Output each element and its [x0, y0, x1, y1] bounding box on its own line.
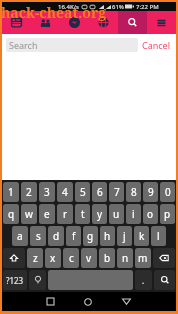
staticText: Search	[9, 39, 38, 51]
staticText: v	[86, 251, 92, 265]
staticText: w	[25, 207, 33, 221]
staticText: i	[132, 207, 135, 221]
button[interactable]: Shift	[3, 248, 25, 268]
button[interactable]: e	[39, 204, 55, 224]
staticText: hack-cheat.org	[1, 3, 107, 22]
button[interactable]: Feed	[2, 11, 31, 34]
staticText: 3	[44, 185, 50, 199]
staticText: 61%	[112, 3, 124, 11]
button[interactable]: p	[160, 204, 175, 224]
button[interactable]: Search	[118, 11, 147, 34]
button[interactable]: Discover	[89, 11, 118, 34]
button[interactable]: Friends	[31, 11, 60, 34]
button[interactable]: y	[92, 204, 107, 224]
button[interactable]: Back	[113, 292, 139, 311]
staticText: 1	[8, 185, 14, 199]
button[interactable]: c	[63, 248, 79, 268]
button[interactable]: b	[99, 248, 115, 268]
button[interactable]: u	[109, 204, 124, 224]
button[interactable]: x	[45, 248, 61, 268]
button[interactable]: 2	[21, 182, 37, 202]
button[interactable]: Emoji	[29, 270, 46, 290]
button[interactable]: k	[134, 226, 149, 246]
staticText: u	[113, 207, 120, 221]
staticText: ?123	[6, 275, 24, 286]
staticText: n	[122, 251, 129, 265]
button[interactable]: Messages	[60, 11, 89, 34]
button[interactable]: 9	[143, 182, 158, 202]
staticText: 6	[97, 185, 103, 199]
button[interactable]: 1	[3, 182, 19, 202]
button[interactable]: 0	[160, 182, 175, 202]
button[interactable]	[48, 270, 133, 290]
button[interactable]: a	[12, 226, 28, 246]
button[interactable]: Search	[6, 38, 138, 52]
staticText: h	[104, 229, 111, 243]
button[interactable]: 5	[75, 182, 90, 202]
staticText: l	[157, 229, 160, 243]
button[interactable]: 7	[109, 182, 124, 202]
staticText: 7:22 PM	[136, 3, 159, 11]
staticText: 0	[165, 185, 171, 199]
button[interactable]: Recents	[37, 292, 63, 311]
button[interactable]: j	[117, 226, 132, 246]
staticText: 5	[80, 185, 86, 199]
button[interactable]: l	[151, 226, 166, 246]
button[interactable]: .	[135, 270, 152, 290]
button[interactable]: s	[30, 226, 46, 246]
staticText: f	[72, 229, 76, 243]
button[interactable]: 8	[126, 182, 141, 202]
staticText: 2	[26, 185, 32, 199]
staticText: 8	[131, 185, 137, 199]
button[interactable]: q	[3, 204, 19, 224]
button[interactable]: m	[135, 248, 151, 268]
button[interactable]: 6	[92, 182, 107, 202]
staticText: 7	[114, 185, 120, 199]
staticText: x	[50, 251, 56, 265]
button[interactable]: d	[48, 226, 64, 246]
button[interactable]: o	[143, 204, 158, 224]
staticText: s	[36, 229, 41, 243]
staticText: 4	[62, 185, 68, 199]
staticText: k	[139, 229, 145, 243]
button[interactable]: Home	[75, 292, 101, 311]
button[interactable]: g	[83, 226, 98, 246]
button[interactable]: h	[100, 226, 115, 246]
button[interactable]: f	[66, 226, 81, 246]
button[interactable]: Search	[154, 270, 175, 290]
button[interactable]: r	[57, 204, 73, 224]
staticText: 16.4K/s	[58, 3, 79, 11]
staticText: 9	[148, 185, 154, 199]
staticText: m	[138, 251, 148, 265]
staticText: d	[53, 229, 60, 243]
staticText: a	[17, 229, 23, 243]
staticText: b	[104, 251, 111, 265]
button[interactable]: n	[117, 248, 133, 268]
staticText: Cancel	[142, 39, 171, 51]
button[interactable]: Cancel	[138, 38, 174, 52]
button[interactable]: w	[21, 204, 37, 224]
staticText: z	[33, 251, 38, 265]
staticText: r	[63, 207, 68, 221]
button[interactable]: 4	[57, 182, 73, 202]
button[interactable]: t	[75, 204, 90, 224]
staticText: q	[8, 207, 15, 221]
button[interactable]: i	[126, 204, 141, 224]
staticText: .	[142, 275, 145, 286]
button[interactable]: Menu	[147, 11, 176, 34]
staticText: o	[147, 207, 154, 221]
staticText: t	[81, 207, 85, 221]
staticText: e	[44, 207, 50, 221]
staticText: p	[164, 207, 171, 221]
staticText: j	[123, 229, 126, 243]
staticText: g	[87, 229, 94, 243]
staticText: c	[69, 251, 74, 265]
button[interactable]: z	[27, 248, 43, 268]
button[interactable]: Backspace	[153, 248, 175, 268]
button[interactable]: ?123	[3, 270, 27, 290]
button[interactable]: 3	[39, 182, 55, 202]
staticText: y	[97, 207, 103, 221]
button[interactable]: v	[81, 248, 97, 268]
